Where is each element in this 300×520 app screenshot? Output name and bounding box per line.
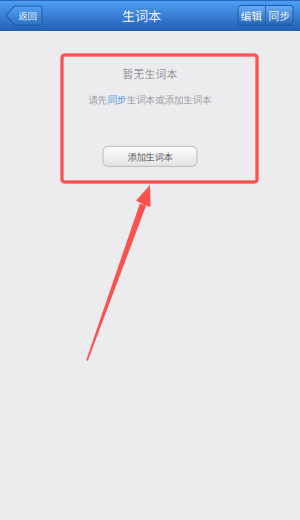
staticText: 生词本或添加生词本: [127, 92, 212, 106]
button[interactable]: 同步: [266, 5, 293, 25]
button[interactable]: 返回: [5, 6, 42, 25]
staticText: 暂无生词本: [122, 66, 177, 81]
staticText: 同步: [107, 92, 127, 106]
staticText: 请先: [88, 92, 107, 106]
staticText: 同步: [268, 8, 290, 23]
staticText: 返回: [18, 9, 36, 22]
staticText: 添加生词本: [127, 150, 172, 163]
button[interactable]: 添加生词本: [103, 146, 197, 166]
button[interactable]: 编辑: [238, 5, 265, 25]
staticText: 生词本: [122, 6, 161, 25]
staticText: 编辑: [240, 8, 262, 23]
